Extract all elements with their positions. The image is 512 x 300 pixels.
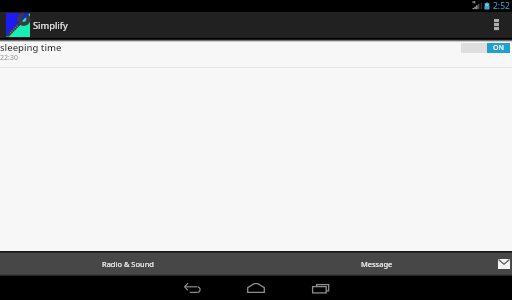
button[interactable]: More options [480,12,512,38]
staticText: Message [361,259,393,269]
button[interactable]: Back [172,276,212,300]
button[interactable]: Message [256,251,498,276]
button[interactable]: Alarm enabled [461,43,510,53]
staticText: Simplify [33,19,68,32]
staticText: Radio & Sound [102,259,154,269]
button[interactable]: Home [236,276,276,300]
button[interactable]: Radio & Sound [0,251,256,276]
staticText: 2:52 [493,0,510,12]
staticText: ON [493,43,504,53]
button[interactable]: Mail [498,251,512,276]
button[interactable]: Recent apps [300,276,340,300]
staticText: 22:30 [0,53,18,63]
button[interactable]: sleeping time [0,42,512,68]
staticText: sleeping time [0,41,62,54]
